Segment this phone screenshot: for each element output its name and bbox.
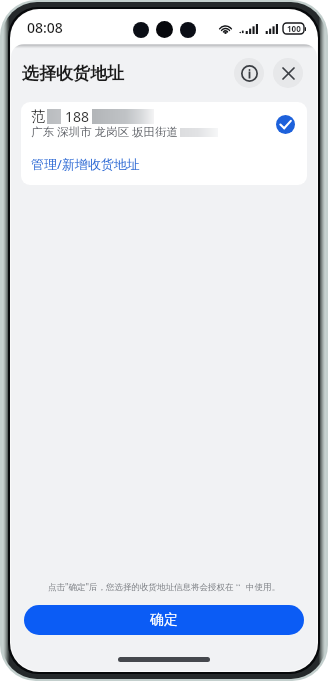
button[interactable]: 确定 bbox=[24, 605, 304, 635]
staticText: 范 bbox=[31, 108, 45, 126]
staticText: 选择收货地址 bbox=[22, 63, 124, 84]
staticText: 188 bbox=[65, 107, 90, 126]
staticText: 管理/新增收货地址 bbox=[31, 155, 140, 173]
button[interactable]: 范 bbox=[21, 102, 307, 146]
staticText: 确定 bbox=[150, 611, 178, 629]
staticText: 中使用。 bbox=[246, 582, 280, 593]
button[interactable]: 管理/新增收货地址 bbox=[21, 146, 307, 185]
staticText: 广东 深圳市 龙岗区 坂田街道 bbox=[31, 124, 178, 140]
button[interactable]: Info bbox=[234, 58, 264, 88]
staticText: 点击"确定"后，您选择的收货地址信息将会授权在 bbox=[48, 581, 234, 593]
button[interactable]: Close bbox=[273, 58, 303, 88]
staticText: 100 bbox=[287, 23, 301, 34]
staticText: 08:08 bbox=[27, 18, 63, 37]
